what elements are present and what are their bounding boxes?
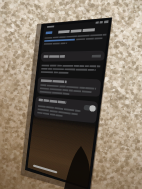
other: Photo of a phone on carpet showing a dar… [0, 0, 142, 189]
